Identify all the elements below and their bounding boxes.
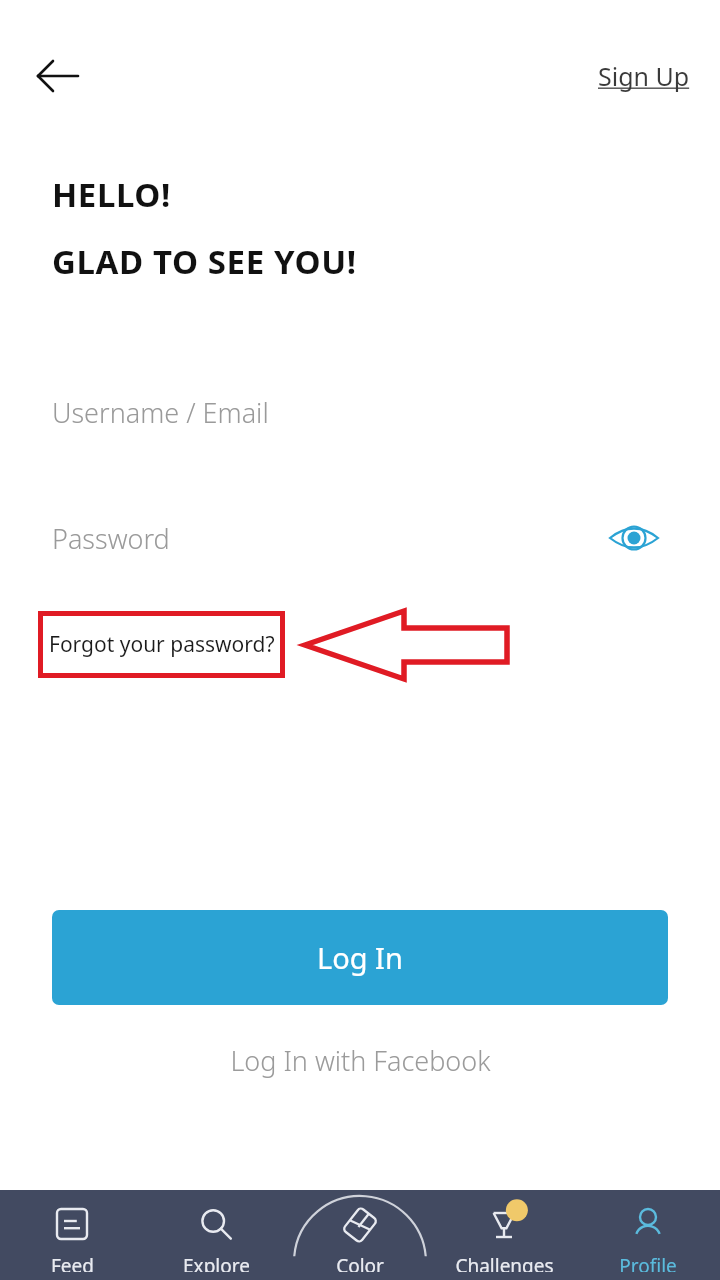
button[interactable]: Log In xyxy=(52,910,668,1005)
staticText: Explore xyxy=(183,1253,250,1272)
button[interactable]: Password xyxy=(52,506,582,570)
staticText: Forgot your password? xyxy=(49,630,275,659)
staticText: Profile xyxy=(619,1253,677,1272)
button[interactable]: Challenges xyxy=(432,1190,576,1280)
button[interactable]: Explore xyxy=(144,1190,288,1280)
button[interactable]: Profile xyxy=(576,1190,720,1280)
staticText: Log In with Facebook xyxy=(230,1042,491,1079)
button[interactable]: Sign Up xyxy=(570,50,690,102)
staticText: Challenges xyxy=(455,1253,554,1272)
staticText: Sign Up xyxy=(598,59,690,93)
button[interactable]: Log In with Facebook xyxy=(0,1030,720,1090)
button[interactable]: Color xyxy=(288,1190,432,1280)
staticText: Password xyxy=(52,520,170,557)
button[interactable]: Feed xyxy=(0,1190,144,1280)
staticText: Log In xyxy=(317,938,403,977)
staticText: Color xyxy=(336,1253,384,1272)
button[interactable]: Forgot your password? xyxy=(38,611,285,678)
staticText: HELLO! xyxy=(52,172,171,217)
staticText: GLAD TO SEE YOU! xyxy=(52,239,357,284)
button[interactable]: Show password xyxy=(596,508,672,568)
button[interactable]: Back xyxy=(20,50,92,102)
staticText: Feed xyxy=(51,1253,94,1272)
staticText: Username / Email xyxy=(52,394,269,431)
button[interactable]: Username / Email xyxy=(52,380,668,444)
